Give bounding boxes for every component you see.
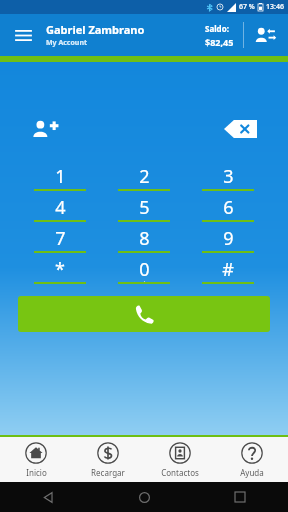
staticText: 4: [55, 195, 66, 220]
button[interactable]: Inicio: [0, 437, 72, 482]
button[interactable]: 3: [186, 164, 270, 195]
staticText: Recargar: [91, 467, 125, 478]
button[interactable]: Contactos: [144, 437, 216, 482]
staticText: Inicio: [26, 467, 47, 478]
button[interactable]: 6: [186, 195, 270, 226]
staticText: 2: [139, 164, 150, 189]
button[interactable]: Transfer contacts: [252, 22, 278, 48]
button[interactable]: Recargar: [72, 437, 144, 482]
staticText: 0: [139, 257, 150, 282]
staticText: Saldo:: [205, 23, 229, 34]
button[interactable]: Home: [96, 482, 192, 512]
button[interactable]: Ayuda: [216, 437, 288, 482]
staticText: #: [222, 257, 234, 282]
button[interactable]: 9: [186, 226, 270, 257]
staticText: Contactos: [161, 467, 199, 478]
staticText: 8: [139, 226, 150, 251]
button[interactable]: Gabriel Zambrano: [46, 22, 205, 48]
staticText: 6: [223, 195, 234, 220]
button[interactable]: Back: [0, 482, 96, 512]
button[interactable]: 8: [102, 226, 186, 257]
button[interactable]: Saldo:: [205, 23, 234, 48]
staticText: 7: [55, 226, 66, 251]
button[interactable]: *: [18, 257, 102, 288]
staticText: *: [55, 257, 65, 282]
button[interactable]: Menu: [10, 22, 36, 48]
staticText: Ayuda: [240, 467, 264, 478]
staticText: 9: [223, 226, 234, 251]
button[interactable]: Backspace: [220, 117, 260, 141]
staticText: Gabriel Zambrano: [46, 22, 145, 37]
staticText: 67 %: [239, 2, 255, 12]
staticText: 5: [139, 195, 150, 220]
button[interactable]: 1: [18, 164, 102, 195]
button[interactable]: Recent apps: [192, 482, 288, 512]
button[interactable]: 2: [102, 164, 186, 195]
button[interactable]: #: [186, 257, 270, 288]
staticText: 13:46: [266, 2, 284, 12]
staticText: +: [143, 279, 147, 287]
button[interactable]: 0: [102, 257, 186, 288]
button[interactable]: Add contact: [28, 112, 62, 146]
button[interactable]: 7: [18, 226, 102, 257]
staticText: 3: [223, 164, 234, 189]
button[interactable]: 4: [18, 195, 102, 226]
button[interactable]: Call: [18, 296, 270, 332]
button[interactable]: 5: [102, 195, 186, 226]
staticText: 1: [55, 164, 66, 189]
staticText: My Account: [46, 38, 87, 48]
staticText: $82,45: [205, 36, 234, 48]
